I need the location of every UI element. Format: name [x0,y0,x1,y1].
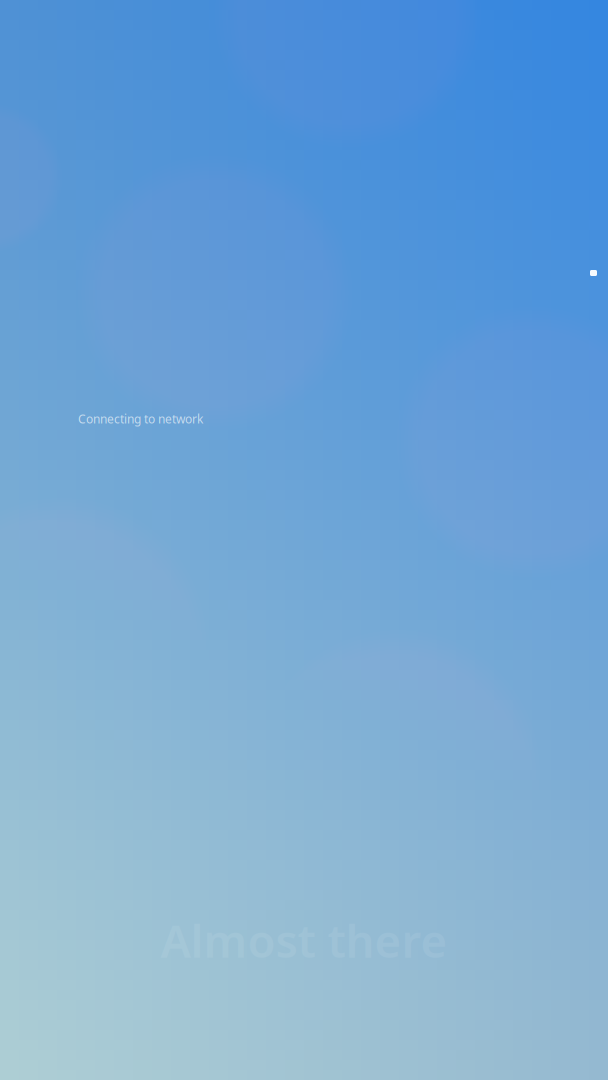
button[interactable]: Notification [590,270,597,276]
staticText: Almost there [160,910,447,970]
staticText: Connecting to network [78,411,203,427]
